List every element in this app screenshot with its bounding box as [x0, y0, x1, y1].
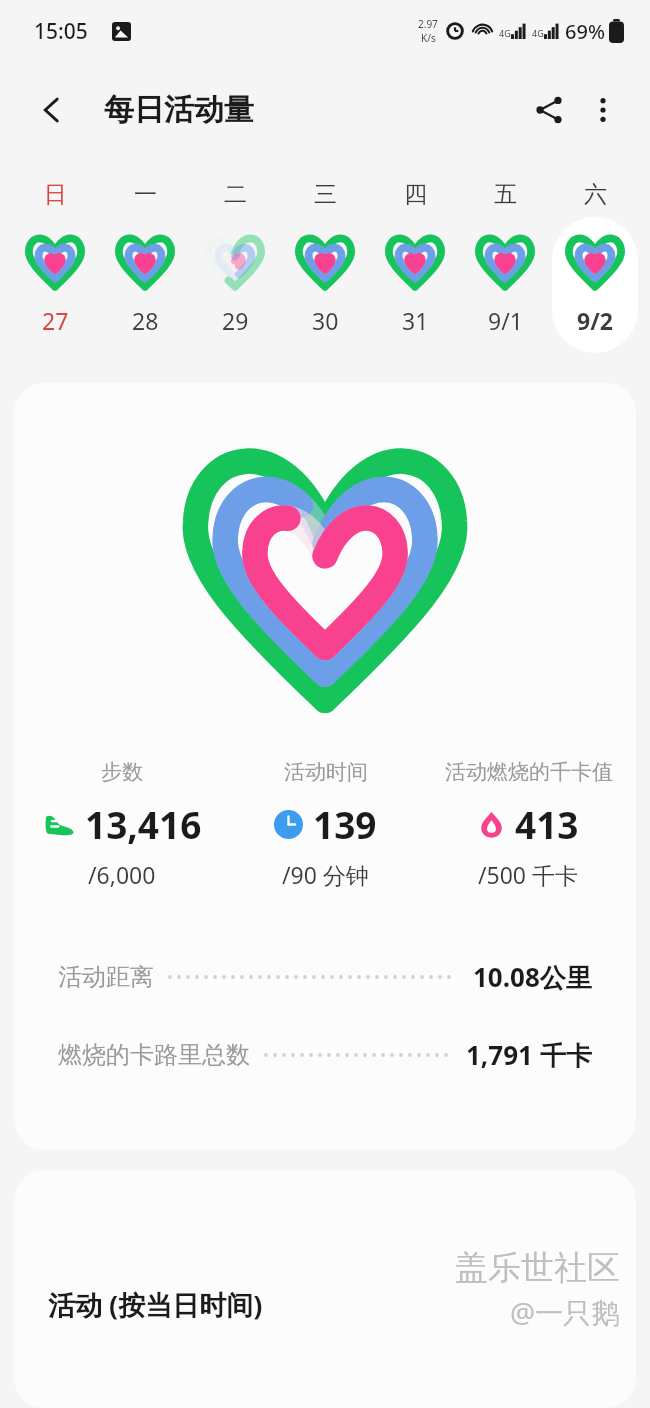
- staticText: 盖乐世社区: [455, 1247, 620, 1289]
- staticText: 13,416: [85, 799, 202, 849]
- staticText: /90 分钟: [282, 859, 369, 890]
- staticText: /6,000: [88, 859, 156, 890]
- button[interactable]: More options: [576, 83, 630, 137]
- button[interactable]: Share: [522, 83, 576, 137]
- staticText: 139: [313, 799, 377, 849]
- staticText: K/s: [421, 31, 436, 45]
- staticText: 29: [222, 305, 249, 336]
- staticText: 15:05: [34, 17, 88, 46]
- button[interactable]: 四: [370, 180, 460, 353]
- button[interactable]: 一: [100, 180, 190, 353]
- staticText: 活动距离: [58, 962, 154, 992]
- button[interactable]: Back: [26, 84, 78, 136]
- staticText: 4G: [499, 27, 511, 39]
- button[interactable]: 活动距离: [14, 938, 636, 1016]
- button[interactable]: 三: [280, 180, 370, 353]
- staticText: 9/2: [577, 305, 613, 336]
- staticText: 413: [515, 799, 579, 849]
- button[interactable]: 燃烧的卡路里总数: [14, 1016, 636, 1094]
- staticText: 活动燃烧的千卡值: [445, 759, 613, 785]
- staticText: 一: [134, 180, 157, 209]
- button[interactable]: 二: [190, 180, 280, 353]
- staticText: 步数: [101, 759, 143, 785]
- staticText: 六: [584, 180, 607, 209]
- staticText: 二: [224, 180, 247, 209]
- staticText: 9/1: [488, 305, 523, 336]
- button[interactable]: 五: [460, 180, 550, 353]
- staticText: 28: [132, 305, 159, 336]
- staticText: 活动时间: [284, 759, 368, 785]
- staticText: @一只鹅: [510, 1293, 620, 1331]
- staticText: 三: [314, 180, 337, 209]
- staticText: 31: [402, 305, 429, 336]
- staticText: 27: [42, 305, 69, 336]
- staticText: 燃烧的卡路里总数: [58, 1040, 250, 1070]
- staticText: 活动 (按当日时间): [48, 1286, 263, 1323]
- staticText: 4G: [532, 27, 544, 39]
- staticText: 每日活动量: [104, 91, 254, 129]
- staticText: 五: [494, 180, 517, 209]
- staticText: 2.97: [418, 17, 438, 31]
- staticText: /500 千卡: [478, 859, 579, 890]
- staticText: 四: [404, 180, 427, 209]
- staticText: 1,791 千卡: [466, 1037, 592, 1073]
- staticText: 日: [44, 180, 67, 209]
- staticText: 30: [312, 305, 339, 336]
- button[interactable]: 日: [10, 180, 100, 353]
- staticText: 10.08公里: [473, 959, 592, 995]
- button[interactable]: 六: [550, 180, 640, 353]
- staticText: 69%: [565, 18, 605, 45]
